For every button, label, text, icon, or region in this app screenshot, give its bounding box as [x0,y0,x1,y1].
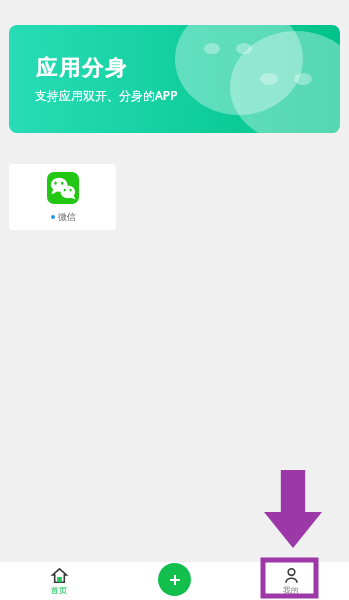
button[interactable]: 应用分身 [9,25,340,133]
button[interactable]: Add [158,563,191,596]
button[interactable]: 我的 [233,562,349,600]
staticText: 首页 [51,585,67,595]
staticText: 支持应用双开、分身的APP [35,87,178,103]
button[interactable]: 微信 [9,164,116,230]
staticText: 微信 [58,211,76,222]
staticText: 应用分身 [35,55,127,81]
staticText: 我的 [283,585,299,595]
button[interactable]: 首页 [0,562,117,600]
